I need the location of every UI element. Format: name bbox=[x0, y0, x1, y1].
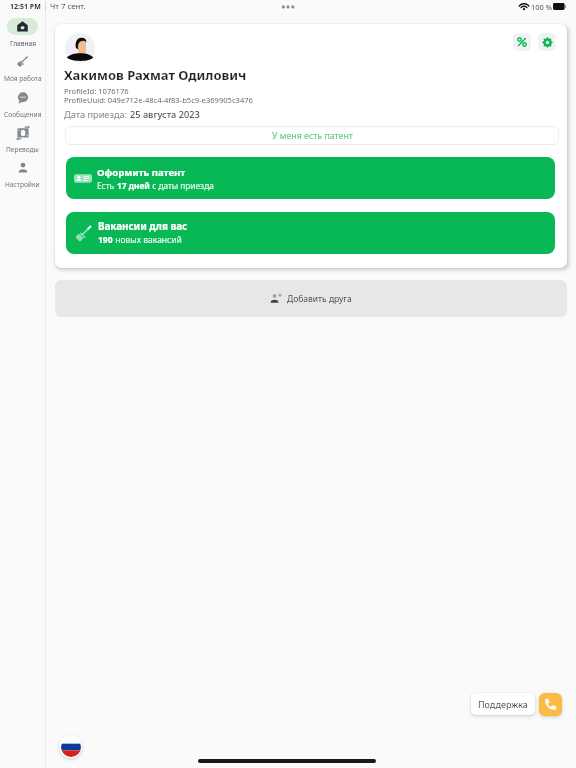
staticText: 25 августа 2023 bbox=[130, 108, 200, 121]
staticText: Переводы bbox=[6, 145, 39, 154]
staticText: У меня есть патент bbox=[272, 130, 353, 142]
button[interactable]: Оформить патент bbox=[66, 157, 555, 199]
staticText: Оформить патент bbox=[97, 166, 186, 179]
staticText: ProfileId: 1076176 bbox=[64, 86, 129, 96]
staticText: Сообщения bbox=[4, 110, 42, 119]
staticText: Главная bbox=[10, 39, 36, 48]
staticText: Вакансии для вас bbox=[98, 220, 188, 233]
staticText: с даты приезда bbox=[150, 180, 214, 191]
staticText: Поддержка bbox=[478, 698, 528, 710]
staticText: Моя работа bbox=[4, 74, 42, 83]
button[interactable]: Переводы bbox=[0, 124, 45, 154]
button[interactable]: У меня есть патент bbox=[65, 126, 559, 145]
staticText: 17 дней bbox=[117, 180, 150, 191]
staticText: 12:51 PM bbox=[10, 2, 41, 12]
button[interactable]: Главная bbox=[0, 18, 45, 48]
staticText: Чт 7 сент. bbox=[50, 1, 86, 12]
button[interactable]: Настройки bbox=[0, 159, 45, 189]
staticText: новых вакансий bbox=[113, 234, 182, 246]
button[interactable]: Добавить друга bbox=[55, 280, 567, 317]
button[interactable]: Language bbox=[59, 735, 82, 758]
button[interactable]: Вакансии для вас bbox=[66, 212, 555, 254]
staticText: Есть bbox=[97, 180, 117, 191]
button[interactable]: Моя работа bbox=[0, 53, 45, 83]
button[interactable]: Поддержка bbox=[471, 693, 535, 715]
staticText: 190 bbox=[98, 234, 113, 246]
button[interactable]: Settings bbox=[538, 33, 556, 51]
staticText: ProfileUuid: 049e712e-48c4-4f83-b5c9-e36… bbox=[64, 95, 253, 105]
button[interactable]: Call support bbox=[539, 693, 562, 716]
staticText: Дата приезда: bbox=[64, 108, 130, 121]
button[interactable]: Discounts bbox=[513, 33, 531, 51]
staticText: Добавить друга bbox=[287, 293, 352, 305]
staticText: Хакимов Рахмат Одилович bbox=[64, 66, 247, 84]
button[interactable]: Сообщения bbox=[0, 89, 45, 119]
staticText: Настройки bbox=[5, 180, 40, 189]
staticText: 100 % bbox=[531, 2, 553, 12]
